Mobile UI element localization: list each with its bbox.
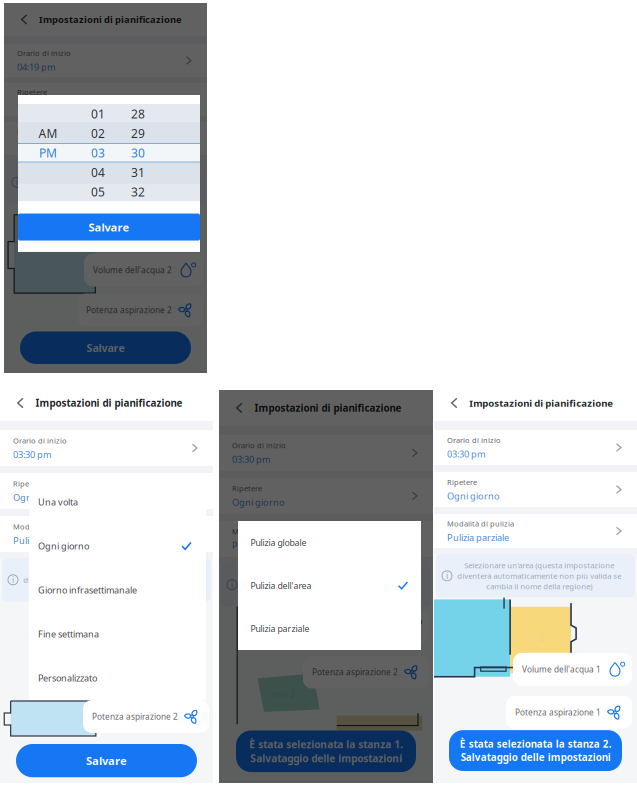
staticText: Salvare (86, 753, 127, 768)
staticText: 30 (131, 145, 145, 161)
staticText: Pulizia parziale (232, 539, 294, 551)
staticText: Una volta (38, 496, 78, 508)
staticText: 28 (131, 106, 145, 122)
staticText: Ogni giorno (38, 540, 89, 552)
button[interactable]: Indietro (17, 3, 31, 36)
staticText: i (12, 574, 14, 585)
button[interactable]: Giorno infrasettimanale (29, 568, 206, 612)
staticText: Pulizia parziale (13, 534, 75, 547)
staticText: Ogni giorno (13, 491, 66, 504)
staticText: 2 (538, 631, 544, 644)
button[interactable]: Ripetere (219, 478, 433, 514)
button[interactable]: Modalità di pulizia (219, 521, 433, 557)
button[interactable]: Ripetere (434, 472, 637, 507)
staticText: Impostazioni di pianificazione (39, 13, 182, 26)
button[interactable]: Salvare (16, 744, 197, 777)
staticText: Modalità di pulizia (17, 126, 84, 136)
button[interactable]: Ripetere (0, 473, 213, 509)
button[interactable]: Modalità di pulizia (0, 516, 213, 552)
staticText: È stata selezionata la stanza 2. Salvata… (459, 737, 611, 764)
staticText: Pulizia globale (250, 536, 306, 548)
button[interactable]: Orario di inizio (219, 435, 433, 471)
button[interactable]: Orario di inizio (4, 44, 207, 77)
staticText: Ripetere (232, 483, 262, 493)
button[interactable]: Modalità di pulizia (4, 122, 207, 155)
staticText: 02 (91, 125, 105, 141)
staticText: 01 (91, 106, 105, 122)
staticText: Pulizia parziale (250, 622, 309, 634)
staticText: AM (38, 125, 57, 141)
staticText: Giorno infrasettimanale (38, 584, 137, 596)
button[interactable]: Orario di inizio (0, 430, 213, 466)
staticText: Ogni giorno (232, 496, 285, 508)
staticText: Orario di inizio (232, 440, 286, 450)
staticText: Modalità di pulizia (232, 526, 299, 536)
staticText: 05 (91, 184, 105, 200)
button[interactable]: Ogni giorno (29, 524, 206, 568)
staticText: Orario di inizio (17, 48, 71, 58)
staticText: Orario di inizio (447, 435, 501, 445)
staticText: i (16, 177, 18, 188)
staticText: 31 (131, 164, 145, 180)
staticText: Volume dell'acqua 1 (522, 664, 601, 675)
staticText: 03:30 pm (232, 453, 271, 465)
staticText: Selezionare un'area (questa impostazione… (27, 167, 191, 197)
button[interactable]: Indietro (232, 390, 246, 426)
staticText: Selezionare un'area (questa impostazione… (457, 560, 621, 592)
staticText: Personalizzato (38, 672, 97, 684)
button[interactable]: Una volta (29, 480, 206, 524)
staticText: 03 (91, 145, 105, 161)
staticText: Salvare (86, 340, 124, 355)
staticText: Impostazioni di pianificazione (35, 396, 182, 410)
staticText: Modalità di pulizia (447, 518, 514, 529)
button[interactable]: Orario di inizio (434, 430, 637, 465)
staticText: Fine settimana (38, 628, 99, 640)
button[interactable]: Indietro (447, 385, 461, 421)
staticText: Pulizia parziale (447, 531, 509, 544)
staticText: Orario di inizio (13, 435, 67, 446)
staticText: Salvare (88, 219, 129, 235)
staticText: Ripetere (447, 477, 477, 487)
staticText: 29 (131, 125, 145, 141)
button[interactable]: Fine settimana (29, 612, 206, 656)
staticText: 03:30 pm (447, 448, 486, 460)
staticText: Ogni giorno (17, 100, 70, 112)
button[interactable]: È stata selezionata la stanza 2. Salvata… (449, 730, 622, 771)
button[interactable]: Personalizzato (29, 656, 206, 700)
staticText: i (446, 570, 448, 581)
staticText: Potenza aspirazione 2 (312, 666, 398, 678)
staticText: Selezionare un'area (questa impostazione… (23, 564, 187, 596)
staticText: Ripetere (17, 87, 47, 97)
staticText: 04 (91, 164, 105, 180)
staticText: Potenza aspirazione 2 (86, 304, 172, 316)
staticText: È stata selezionata la stanza 1. Salvata… (249, 737, 403, 765)
staticText: Potenza aspirazione 1 (515, 707, 601, 718)
staticText: Ogni giorno (447, 490, 500, 502)
staticText: Impostazioni di pianificazione (254, 401, 401, 415)
button[interactable]: Pulizia dell'area (238, 564, 420, 607)
staticText: Pulizia parziale (17, 139, 79, 151)
staticText: Impostazioni di pianificazione (469, 396, 613, 410)
staticText: i (231, 579, 233, 590)
staticText: 03:30 pm (13, 448, 52, 461)
staticText: Potenza aspirazione 2 (92, 711, 178, 722)
button[interactable]: Salvare (20, 331, 191, 364)
button[interactable]: Indietro (13, 385, 27, 421)
button[interactable]: Modalità di pulizia (434, 514, 637, 548)
button[interactable]: Ripetere (4, 83, 207, 116)
staticText: PM (39, 145, 57, 161)
button[interactable]: Pulizia globale (238, 521, 420, 564)
staticText: Modalità di pulizia (13, 521, 80, 532)
staticText: 32 (131, 184, 145, 200)
button[interactable]: È stata selezionata la stanza 1. Salvata… (236, 730, 416, 772)
button[interactable]: Salvare (18, 213, 200, 241)
staticText: Ripetere (13, 478, 43, 489)
staticText: 04:19 pm (17, 61, 56, 73)
staticText: Pulizia dell'area (250, 579, 311, 591)
staticText: Volume dell'acqua 2 (93, 264, 172, 276)
staticText: Selezionare un'area (questa impostazione… (242, 569, 406, 600)
button[interactable]: Pulizia parziale (238, 607, 420, 650)
